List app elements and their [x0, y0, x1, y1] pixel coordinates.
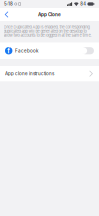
staticText: 5:18 [4, 1, 13, 7]
staticText: Once Duplicated App is enabled, the corr… [3, 25, 91, 37]
staticText: f [7, 47, 10, 55]
button[interactable]: Back [2, 9, 11, 19]
staticText: App Clone [38, 12, 61, 17]
staticText: 84 [80, 1, 86, 6]
staticText: Facebook [15, 48, 38, 53]
button[interactable]: App clone instructions [0, 66, 99, 81]
staticText: App clone instructions [5, 71, 54, 76]
